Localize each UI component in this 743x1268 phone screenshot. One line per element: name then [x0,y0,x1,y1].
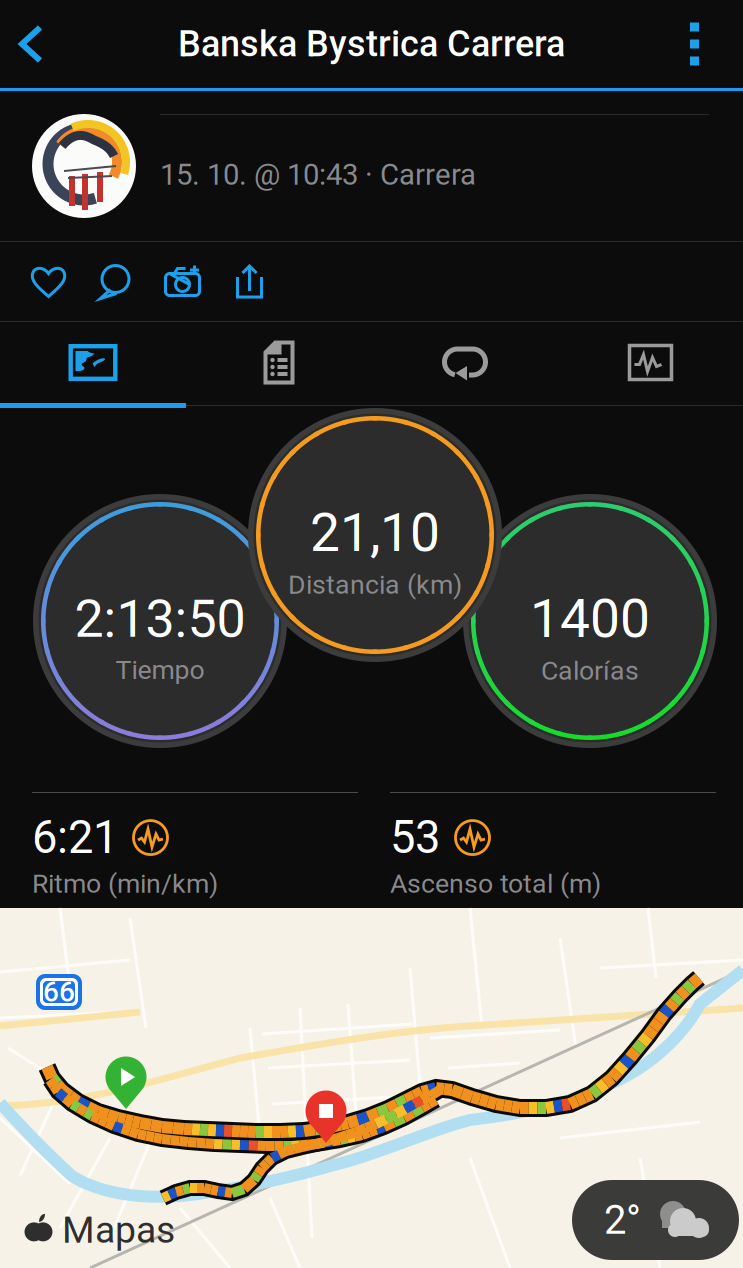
staticText: 53 [390,811,440,864]
staticText: 2:13:50 [74,588,245,649]
staticText: Calorías [541,655,639,686]
staticText: Banska Bystrica Carrera [178,23,565,65]
button[interactable]: Add photo [149,242,216,320]
button[interactable]: Like [15,242,82,320]
button[interactable]: Details [186,322,372,403]
staticText: 2° [604,1197,641,1243]
staticText: 6:21 [32,811,118,864]
staticText: 21,10 [310,502,440,564]
button[interactable]: Back [0,0,90,88]
staticText: Mapas [62,1208,175,1252]
staticText: Ritmo (min/km) [32,868,218,899]
staticText: Tiempo [115,654,204,686]
staticText: 66 [43,976,75,1008]
button[interactable]: Laps [372,322,558,403]
button[interactable]: Map [0,322,186,403]
button[interactable]: Heart rate [558,322,743,403]
staticText: Ascenso total (m) [390,868,601,899]
staticText: 1400 [530,588,650,650]
staticText: 15. 10. @ 10:43 · Carrera [160,158,476,192]
staticText: Distancia (km) [288,569,462,600]
button[interactable]: More options [653,0,743,88]
button[interactable]: Comment [82,242,149,320]
button[interactable]: Share [216,242,283,320]
